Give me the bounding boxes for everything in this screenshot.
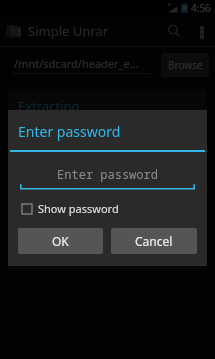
button[interactable]: Cancel: [111, 228, 197, 254]
staticText: /mnt/sdcard/header_e…: [14, 56, 139, 71]
button[interactable]: Show password: [22, 201, 195, 216]
staticText: Enter password: [20, 166, 195, 182]
staticText: 4:56: [191, 1, 211, 15]
button[interactable]: OK: [18, 228, 103, 254]
staticText: Extracting: [18, 97, 80, 115]
staticText: Simple Unrar: [28, 22, 109, 40]
button[interactable]: Search: [157, 16, 191, 46]
staticText: OK: [52, 233, 69, 249]
button[interactable]: More options: [191, 16, 213, 46]
button[interactable]: Browse: [161, 53, 209, 77]
staticText: Cancel: [135, 233, 173, 249]
staticText: Browse: [168, 58, 203, 72]
staticText: Enter password: [18, 122, 121, 141]
staticText: Show password: [38, 201, 119, 216]
button[interactable]: /mnt/sdcard/header_e…: [6, 56, 155, 74]
button[interactable]: Enter password: [20, 166, 195, 190]
